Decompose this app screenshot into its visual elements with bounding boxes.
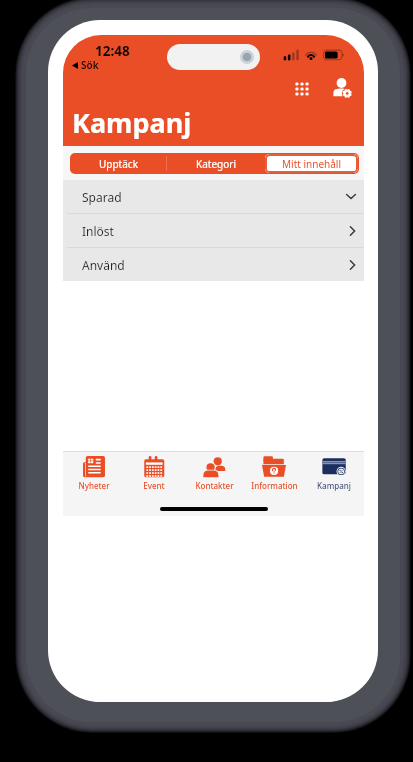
staticText: Sök bbox=[81, 58, 99, 72]
staticText: Information bbox=[251, 480, 298, 491]
staticText: Inlöst bbox=[82, 223, 114, 239]
staticText: Kampanj bbox=[72, 104, 192, 141]
button[interactable]: Sparad bbox=[63, 180, 364, 213]
button[interactable]: Kampanj bbox=[304, 452, 364, 516]
staticText: 12:48 bbox=[95, 42, 130, 60]
button[interactable]: Apps bbox=[295, 82, 309, 96]
staticText: Kategori bbox=[196, 157, 236, 171]
button[interactable]: Nyheter bbox=[63, 452, 124, 516]
button[interactable]: Event bbox=[124, 452, 184, 516]
button[interactable]: Information bbox=[244, 452, 304, 516]
button[interactable]: Mitt innehåll bbox=[265, 154, 358, 173]
staticText: Mitt innehåll bbox=[282, 157, 341, 171]
button[interactable]: Använd bbox=[63, 248, 364, 281]
staticText: Kampanj bbox=[317, 480, 351, 491]
button[interactable]: Kontakter bbox=[184, 452, 244, 516]
button[interactable]: Account settings bbox=[333, 78, 353, 98]
staticText: Använd bbox=[82, 257, 125, 273]
staticText: Nyheter bbox=[78, 480, 110, 491]
staticText: Upptäck bbox=[99, 157, 138, 171]
button[interactable]: Sök bbox=[72, 58, 99, 72]
button[interactable]: Upptäck bbox=[70, 153, 166, 174]
staticText: Kontakter bbox=[195, 480, 234, 491]
button[interactable]: Kategori bbox=[167, 153, 264, 174]
staticText: Sparad bbox=[82, 189, 122, 205]
staticText: Event bbox=[143, 480, 165, 491]
button[interactable]: Inlöst bbox=[63, 214, 364, 247]
